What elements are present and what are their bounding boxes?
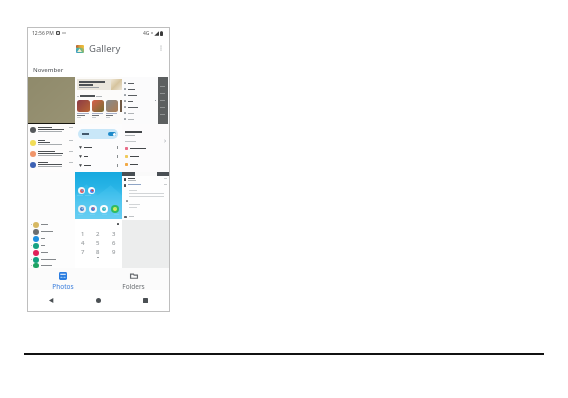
staticText: 1: [81, 230, 85, 238]
button[interactable]: Back: [28, 290, 75, 311]
button[interactable]: [75, 124, 122, 172]
button[interactable]: Home: [75, 290, 122, 311]
staticText: Photos: [52, 282, 74, 290]
staticText: November: [33, 66, 64, 74]
button[interactable]: More options: [156, 43, 166, 53]
button[interactable]: [122, 77, 169, 124]
button[interactable]: [122, 172, 169, 220]
staticText: 7: [81, 248, 85, 256]
staticText: 4: [81, 239, 85, 247]
button[interactable]: Photos: [28, 268, 98, 290]
staticText: 6: [112, 239, 116, 247]
button[interactable]: Recent apps: [122, 290, 169, 311]
button[interactable]: [28, 124, 75, 172]
staticText: Gallery: [89, 42, 121, 55]
staticText: 5: [96, 239, 100, 247]
button[interactable]: [75, 77, 122, 124]
button[interactable]: Folders: [98, 268, 169, 290]
button[interactable]: 1: [75, 220, 122, 268]
button[interactable]: [75, 172, 122, 220]
staticText: 8: [96, 248, 100, 256]
staticText: 2: [96, 230, 100, 238]
staticText: Folders: [122, 282, 145, 290]
button[interactable]: [122, 124, 169, 172]
button[interactable]: [28, 77, 75, 124]
staticText: 12:56 PM: [32, 30, 54, 37]
staticText: 4G: [143, 30, 150, 37]
staticText: 9: [112, 248, 116, 256]
button[interactable]: [28, 220, 75, 268]
button[interactable]: Gallery: [76, 42, 121, 55]
staticText: 3: [112, 230, 116, 238]
